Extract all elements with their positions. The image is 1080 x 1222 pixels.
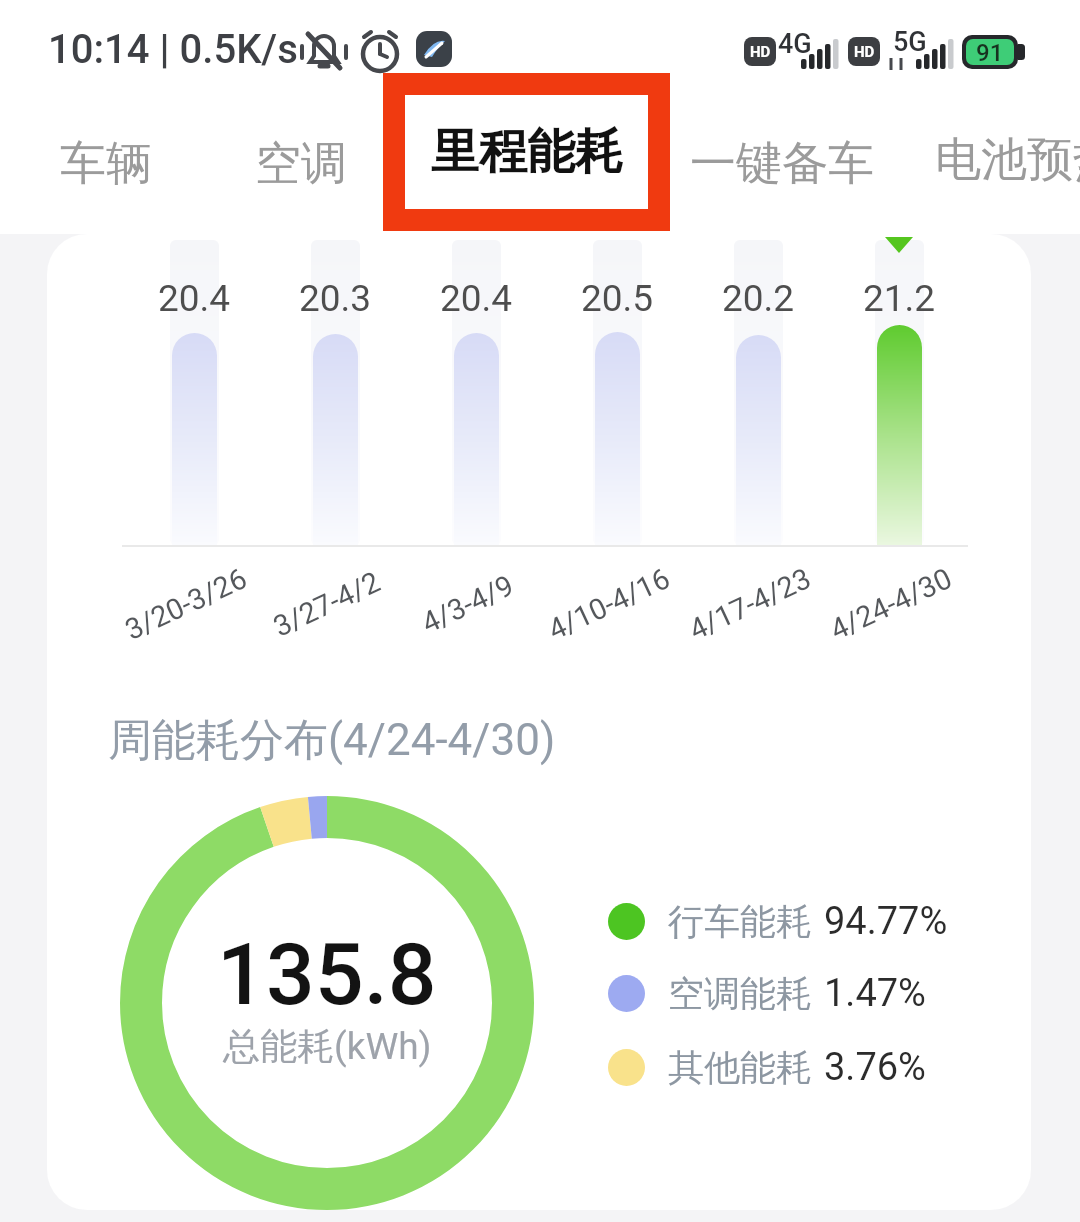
button[interactable]: 一键备车 (672, 129, 892, 199)
staticText: 空调 (255, 135, 347, 193)
button[interactable]: 车辆 (16, 129, 196, 199)
staticText: 10:14 | 0.5K/s (48, 26, 298, 73)
staticText: 4/24-4/30 (825, 561, 957, 647)
staticText: 一键备车 (690, 135, 874, 193)
staticText: HD (750, 43, 771, 61)
button[interactable]: 空调 (211, 129, 391, 199)
staticText: 135.8 (217, 924, 437, 1025)
staticText: 20.4 (440, 277, 513, 320)
staticText: 20.5 (581, 277, 654, 320)
staticText: 周能耗分布(4/24-4/30) (108, 713, 556, 768)
staticText: 1.47% (824, 971, 926, 1016)
staticText: 94.77% (824, 899, 948, 944)
staticText: 20.4 (158, 277, 231, 320)
staticText: 空调能耗 (668, 971, 812, 1016)
staticText: 3.76% (824, 1045, 926, 1090)
staticText: 行车能耗 (668, 899, 812, 944)
staticText: 其他能耗 (668, 1045, 812, 1090)
staticText: 电池预热 (935, 131, 1080, 189)
button[interactable]: 电池预热 (935, 129, 1080, 199)
staticText: 20.2 (722, 277, 795, 320)
staticText: 4/10-4/16 (543, 561, 675, 647)
staticText: 车辆 (60, 135, 152, 193)
staticText: 4/3-4/9 (416, 568, 520, 640)
staticText: 20.3 (299, 277, 372, 320)
staticText: HD (854, 43, 875, 61)
staticText: 里程能耗 (431, 122, 623, 182)
staticText: 4/17-4/23 (684, 561, 816, 647)
staticText: 21.2 (863, 277, 936, 320)
staticText: 4G (778, 28, 812, 60)
button[interactable]: 里程能耗 (405, 95, 648, 209)
staticText: 3/27-4/2 (268, 564, 386, 643)
staticText: 3/20-3/26 (120, 561, 252, 647)
staticText: 5G (893, 26, 927, 58)
staticText: 91 (976, 39, 1004, 65)
staticText: 总能耗(kWh) (223, 1023, 432, 1070)
